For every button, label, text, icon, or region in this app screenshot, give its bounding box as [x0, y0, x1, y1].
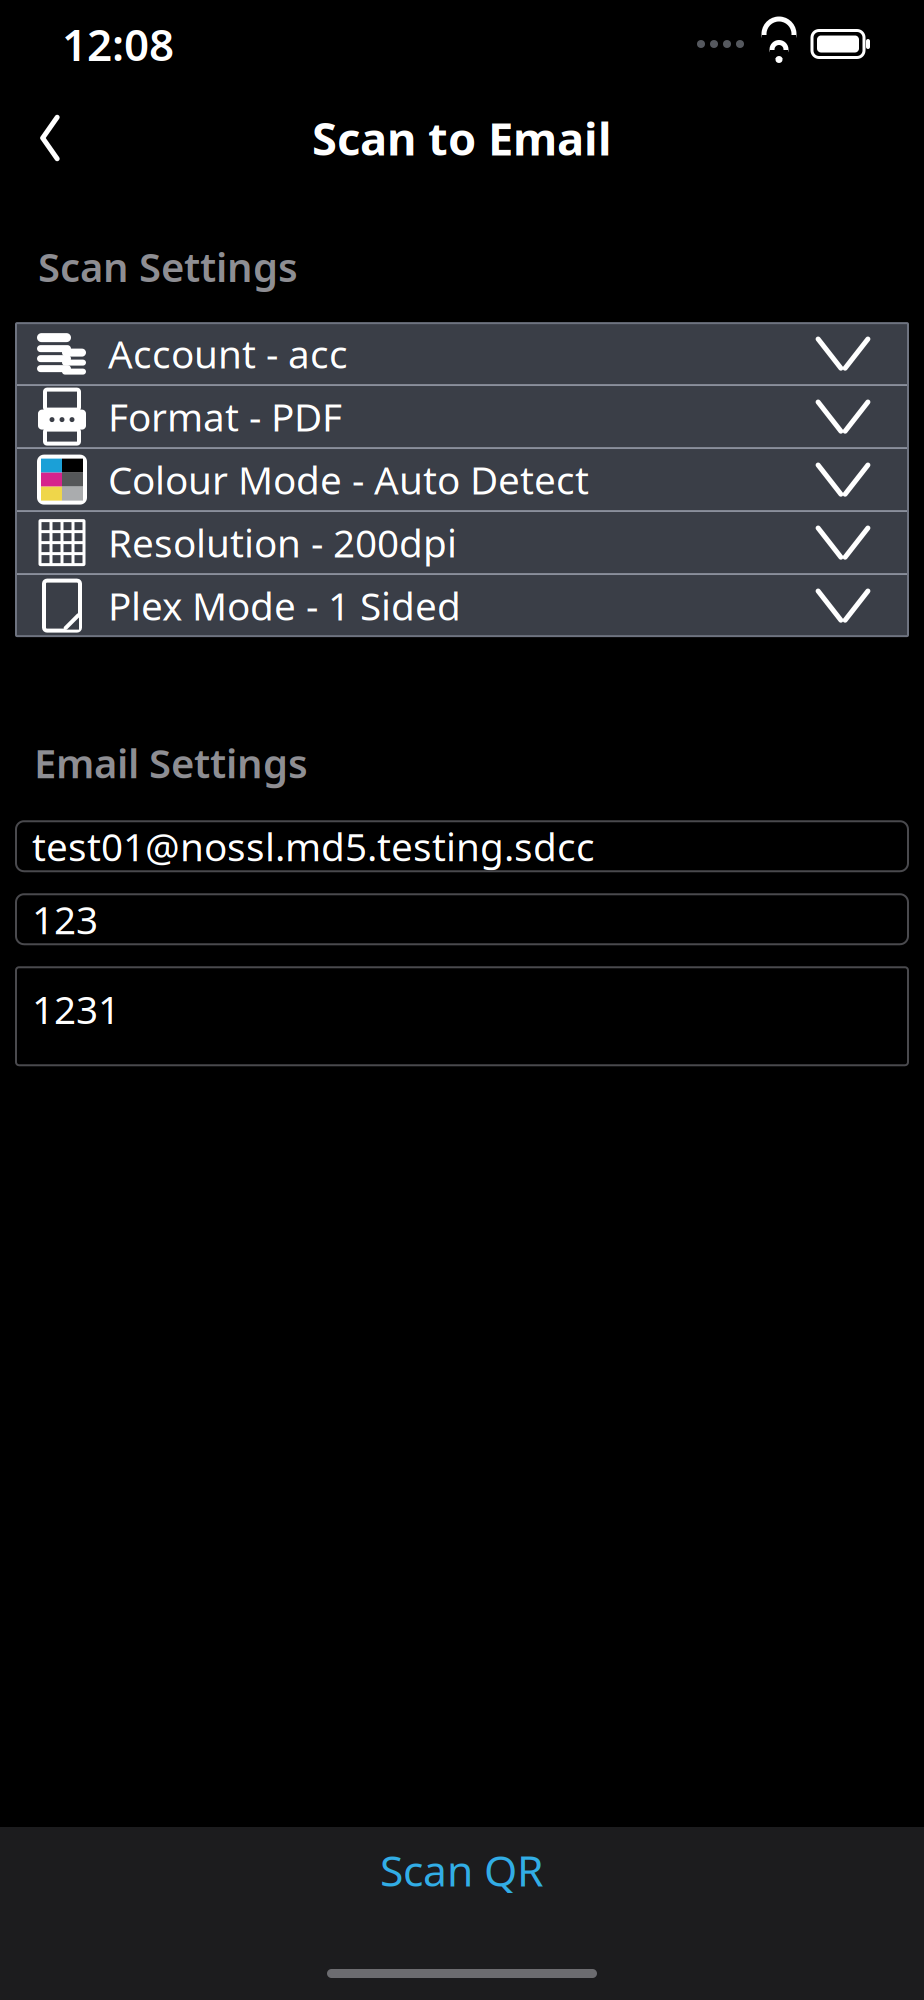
button[interactable]: 1231	[16, 967, 908, 1065]
button[interactable]: Scan QR	[0, 1827, 924, 1913]
button[interactable]: Back	[10, 98, 90, 178]
staticText: test01@nossl.md5.testing.sdcc	[32, 821, 595, 872]
staticText: Scan Settings	[38, 240, 298, 293]
staticText: Scan QR	[380, 1842, 544, 1898]
staticText: Plex Mode - 1 Sided	[108, 580, 461, 631]
staticText: Scan to Email	[312, 108, 612, 168]
staticText: Resolution - 200dpi	[108, 517, 457, 568]
staticText: Email Settings	[34, 736, 308, 789]
button[interactable]: Account - acc	[16, 323, 908, 384]
staticText: 123	[32, 894, 98, 945]
button[interactable]: Resolution - 200dpi	[16, 512, 908, 573]
staticText: Account - acc	[108, 328, 348, 379]
staticText: 1231	[32, 983, 120, 1034]
staticText: Format - PDF	[108, 391, 342, 442]
staticText: Colour Mode - Auto Detect	[108, 454, 589, 505]
button[interactable]: 123	[16, 894, 908, 944]
button[interactable]: Plex Mode - 1 Sided	[16, 575, 908, 636]
staticText: 12:08	[62, 15, 174, 73]
button[interactable]: test01@nossl.md5.testing.sdcc	[16, 821, 908, 871]
button[interactable]: Colour Mode - Auto Detect	[16, 449, 908, 510]
button[interactable]: Format - PDF	[16, 386, 908, 447]
